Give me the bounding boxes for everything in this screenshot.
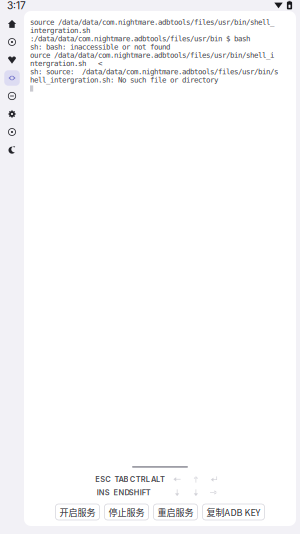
button[interactable] <box>149 487 167 497</box>
staticText: END <box>113 488 129 497</box>
staticText: :/data/data/com.nightmare.adbtools/files… <box>30 34 250 43</box>
button[interactable]: Down arrow <box>173 488 181 497</box>
button[interactable]: ESC <box>94 474 112 484</box>
button[interactable]: About <box>0 123 24 141</box>
button[interactable]: INS <box>94 487 112 497</box>
staticText: hell_intergration.sh: No such file or di… <box>30 76 218 84</box>
staticText: 复制ADB KEY <box>206 505 260 518</box>
button[interactable]: Left arrow <box>173 475 181 484</box>
button[interactable]: 开启服务 <box>55 504 99 520</box>
staticText: ource /data/data/com.nightmare.adbtools/… <box>30 51 274 59</box>
button[interactable]: 停止服务 <box>104 504 148 520</box>
button[interactable]: Return <box>209 475 217 484</box>
button[interactable]: END <box>112 487 131 497</box>
staticText: TAB <box>114 475 128 484</box>
staticText: ntergration.sh < <box>30 59 102 68</box>
staticText: 3:17 <box>7 0 26 12</box>
staticText: sh: bash: inaccessible or not found <box>30 43 170 51</box>
button[interactable]: Device <box>0 33 24 51</box>
staticText: 重启服务 <box>157 505 193 518</box>
button[interactable]: 复制ADB KEY <box>202 504 264 520</box>
button[interactable]: Settings <box>0 105 24 123</box>
button[interactable]: Dark mode <box>0 141 24 159</box>
staticText: CTRL <box>130 475 150 484</box>
button[interactable]: TAB <box>112 474 131 484</box>
button[interactable]: Down arrow <box>192 488 200 497</box>
button[interactable]: Right arrow <box>209 488 217 497</box>
button[interactable]: Terminal <box>0 69 24 87</box>
staticText: ESC <box>95 475 111 484</box>
staticText: sh: source: /data/data/com.nightmare.adb… <box>30 67 278 76</box>
staticText: SHIFT <box>129 488 151 497</box>
button[interactable]: Home <box>0 15 24 33</box>
button[interactable]: ALT <box>149 474 167 484</box>
button[interactable]: Up arrow <box>192 475 200 484</box>
staticText: INS <box>97 488 110 497</box>
button[interactable]: SHIFT <box>131 487 149 497</box>
button[interactable]: 重启服务 <box>153 504 197 520</box>
staticText: 停止服务 <box>108 505 144 518</box>
button[interactable]: CTRL <box>131 474 149 484</box>
staticText: ALT <box>151 475 165 484</box>
staticText: 开启服务 <box>59 505 95 518</box>
staticText: source /data/data/com.nightmare.adbtools… <box>30 18 274 26</box>
button[interactable]: Favorites <box>0 51 24 69</box>
button[interactable]: Disconnect <box>0 87 24 105</box>
staticText: intergration.sh <box>30 26 90 35</box>
